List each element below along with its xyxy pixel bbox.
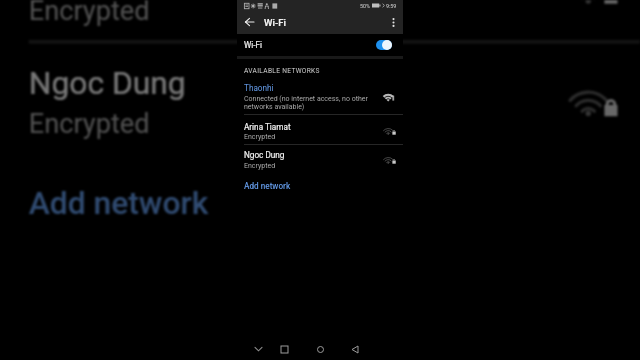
button[interactable]: Thaonhi <box>237 78 403 115</box>
staticText: Thaonhi <box>244 83 274 93</box>
staticText: 50% <box>360 3 371 9</box>
button[interactable]: Ngoc Dung <box>237 145 403 175</box>
staticText: Wi-Fi <box>244 40 263 50</box>
button[interactable]: Hide keyboard <box>251 342 265 356</box>
staticText: Arina Tiamat <box>244 122 291 132</box>
button[interactable]: Arina Tiamat <box>2 0 640 44</box>
staticText: Encrypted <box>244 162 276 170</box>
staticText: Ngoc Dung <box>29 63 188 102</box>
button[interactable]: More options <box>384 13 402 31</box>
button[interactable]: Add network <box>237 176 403 194</box>
staticText: Encrypted <box>29 0 153 28</box>
button[interactable]: Ngoc Dung <box>2 44 640 160</box>
button[interactable]: Add network <box>2 164 640 234</box>
staticText: 9:59 <box>386 3 397 9</box>
button[interactable]: Recent apps <box>277 342 291 356</box>
staticText: Add network <box>244 181 291 191</box>
staticText: Encrypted <box>244 133 276 141</box>
button[interactable]: Home <box>313 342 327 356</box>
staticText: Add network <box>29 183 211 222</box>
staticText: Wi-Fi <box>264 17 286 28</box>
button[interactable]: Arina Tiamat <box>237 115 403 145</box>
staticText: AVAILABLE NETWORKS <box>244 67 320 75</box>
staticText: Ngoc Dung <box>244 150 285 160</box>
button[interactable]: Wi-Fi <box>237 34 403 56</box>
staticText: Connected (no internet access, no other … <box>244 95 368 111</box>
button[interactable]: Navigate up <box>240 13 258 31</box>
staticText: Encrypted <box>29 110 153 141</box>
button[interactable]: Back <box>348 342 362 356</box>
